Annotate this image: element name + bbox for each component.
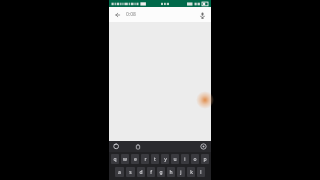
button[interactable]: q (111, 154, 119, 164)
button[interactable]: i (181, 154, 189, 164)
button[interactable]: Settings (199, 142, 208, 151)
staticText: l (200, 169, 202, 176)
button[interactable]: o (191, 154, 199, 164)
button[interactable]: Back (109, 7, 211, 22)
button[interactable]: y (161, 154, 169, 164)
button[interactable]: w (121, 154, 129, 164)
staticText: j (180, 169, 182, 176)
button[interactable]: r (141, 154, 149, 164)
staticText: i (184, 156, 186, 163)
staticText: y (164, 156, 167, 163)
button[interactable]: s (126, 167, 135, 177)
button[interactable]: u (171, 154, 179, 164)
staticText: q (113, 156, 117, 163)
button[interactable]: j (177, 167, 185, 177)
staticText: a (118, 169, 121, 176)
staticText: f (150, 169, 152, 176)
staticText: t (154, 156, 156, 163)
staticText: u (173, 156, 177, 163)
staticText: r (144, 156, 147, 163)
button[interactable]: h (167, 167, 175, 177)
staticText: w (123, 156, 127, 163)
button[interactable]: Emoji (112, 142, 121, 151)
button[interactable]: Clipboard (133, 142, 142, 151)
button[interactable]: k (187, 167, 195, 177)
staticText: d (139, 169, 143, 176)
button[interactable]: Voice search (197, 10, 207, 20)
staticText: p (203, 156, 207, 163)
button[interactable]: Back (113, 10, 122, 19)
button[interactable]: d (137, 167, 145, 177)
staticText: e (134, 156, 137, 163)
button[interactable]: t (151, 154, 159, 164)
button[interactable]: e (131, 154, 139, 164)
staticText: 0:08 (126, 11, 136, 18)
staticText: o (193, 156, 197, 163)
button[interactable]: l (197, 167, 205, 177)
button[interactable]: p (201, 154, 209, 164)
staticText: g (159, 169, 163, 176)
button[interactable]: a (115, 167, 124, 177)
button[interactable]: g (157, 167, 165, 177)
staticText: k (190, 169, 193, 176)
button[interactable]: f (147, 167, 155, 177)
staticText: s (129, 169, 132, 176)
staticText: h (169, 169, 173, 176)
